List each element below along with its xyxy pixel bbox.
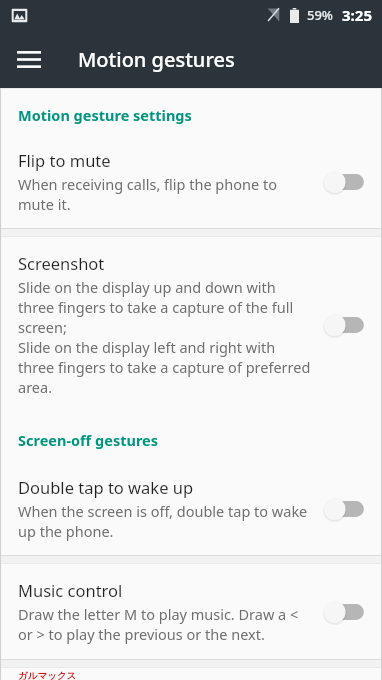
staticText: area. bbox=[18, 377, 53, 397]
staticText: Slide on the display left and right with bbox=[18, 337, 276, 357]
staticText: Motion gestures bbox=[78, 46, 235, 73]
button[interactable]: Toggle, off bbox=[318, 307, 372, 343]
button[interactable]: Music control bbox=[0, 564, 382, 659]
staticText: ガルマックス bbox=[18, 670, 77, 680]
staticText: up the phone. bbox=[18, 521, 114, 541]
staticText: Double tap to wake up bbox=[18, 476, 194, 498]
staticText: three fingers to take a capture of prefe… bbox=[18, 357, 311, 377]
button[interactable]: Double tap to wake up bbox=[0, 462, 382, 555]
button[interactable]: Toggle, off bbox=[318, 594, 372, 630]
staticText: When receiving calls, flip the phone to bbox=[18, 174, 277, 194]
button[interactable]: Flip to mute bbox=[0, 135, 382, 228]
staticText: Motion gesture settings bbox=[18, 105, 192, 125]
staticText: three fingers to take a capture of the f… bbox=[18, 297, 294, 317]
staticText: When the screen is off, double tap to wa… bbox=[18, 501, 308, 521]
staticText: or > to play the previous or the next. bbox=[18, 624, 265, 644]
staticText: Slide on the display up and down with bbox=[18, 277, 276, 297]
staticText: Screenshot bbox=[18, 252, 105, 274]
staticText: 3:25 bbox=[342, 5, 372, 25]
button[interactable]: Toggle, off bbox=[318, 164, 372, 200]
button[interactable]: Open navigation menu bbox=[7, 37, 51, 81]
staticText: 59% bbox=[307, 6, 333, 24]
staticText: Draw the letter M to play music. Draw a … bbox=[18, 604, 299, 624]
button[interactable]: Draw the letter O to launch the cam bbox=[0, 668, 382, 680]
staticText: Flip to mute bbox=[18, 149, 111, 171]
button[interactable]: Screenshot bbox=[0, 237, 382, 412]
button[interactable]: Toggle, off bbox=[318, 491, 372, 527]
staticText: screen; bbox=[18, 317, 67, 337]
staticText: Music control bbox=[18, 579, 123, 601]
staticText: Screen-off gestures bbox=[18, 430, 159, 450]
staticText: mute it. bbox=[18, 194, 71, 214]
